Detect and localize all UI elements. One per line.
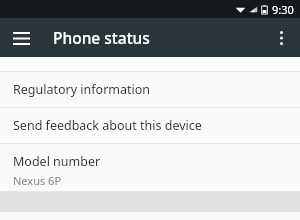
staticText: Send feedback about this device — [13, 117, 202, 134]
button[interactable]: Open navigation drawer — [5, 22, 37, 54]
staticText: Model number — [13, 153, 101, 170]
staticText: Phone status — [53, 27, 150, 48]
button[interactable]: More options — [265, 22, 297, 54]
staticText: 9:30 — [272, 2, 294, 17]
staticText: Nexus 6P — [13, 173, 62, 188]
staticText: Regulatory information — [13, 81, 151, 98]
button[interactable]: Regulatory information — [0, 72, 300, 107]
button[interactable]: Send feedback about this device — [0, 108, 300, 143]
button[interactable]: Model number — [0, 144, 300, 191]
